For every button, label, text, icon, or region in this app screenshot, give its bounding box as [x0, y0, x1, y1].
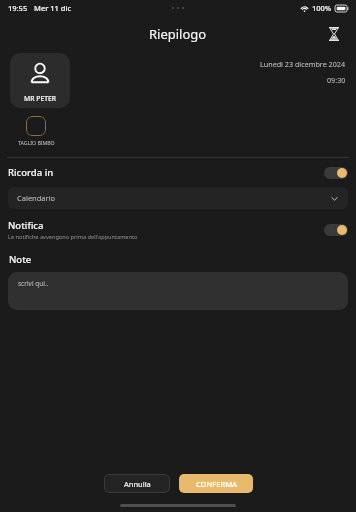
staticText: Calendario — [17, 193, 56, 203]
button[interactable]: Calendario — [8, 187, 348, 209]
staticText: scrivi qui.. — [18, 279, 49, 288]
button[interactable]: Attiva — [324, 224, 348, 236]
staticText: 19:55 — [8, 3, 28, 13]
staticText: CONFERMA — [196, 479, 237, 489]
staticText: Notifica — [8, 219, 44, 232]
staticText: 100% — [312, 3, 332, 13]
staticText: Note — [9, 253, 32, 266]
staticText: TAGLIO BIMBO — [18, 139, 55, 146]
button[interactable]: Annulla — [104, 474, 170, 493]
staticText: Ricorda in — [8, 166, 54, 179]
staticText: 09:30 — [327, 75, 346, 85]
button[interactable]: CONFERMA — [179, 474, 253, 493]
button[interactable]: Ricorda in — [0, 164, 356, 181]
button[interactable]: Notifica — [0, 217, 356, 243]
staticText: Annulla — [124, 479, 151, 489]
staticText: Lunedì 23 dicembre 2024 — [260, 59, 346, 69]
staticText: Mer 11 dic — [34, 3, 72, 13]
staticText: MR PETER — [24, 94, 57, 103]
button[interactable]: Taglio bimbo — [26, 116, 46, 136]
button[interactable]: scrivi qui.. — [8, 272, 348, 310]
button[interactable]: Attiva — [324, 167, 348, 179]
staticText: Riepilogo — [149, 25, 207, 43]
button[interactable]: MR PETER — [10, 53, 70, 108]
button[interactable]: Cronologia — [321, 21, 347, 47]
staticText: Le notifiche avvengono prima dell'appunt… — [8, 233, 138, 241]
